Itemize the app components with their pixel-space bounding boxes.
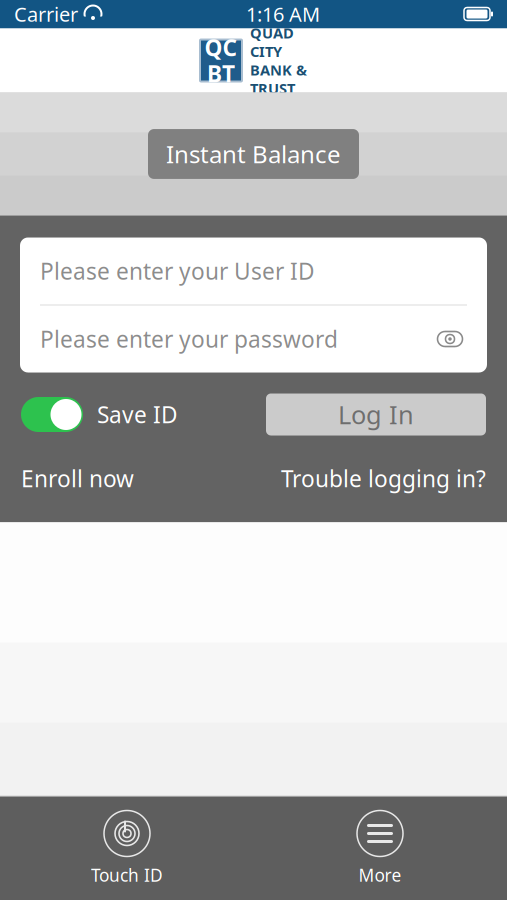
button[interactable]: More (253, 796, 506, 900)
staticText: Instant Balance (166, 138, 341, 170)
staticText: TRUST (250, 78, 295, 98)
button[interactable]: Show password (433, 322, 467, 356)
button[interactable]: Save ID (21, 397, 178, 432)
button[interactable]: Trouble logging in? (281, 463, 486, 494)
button[interactable]: Enroll now (21, 463, 134, 494)
staticText: BANK & (250, 60, 307, 79)
staticText: 1:16 AM (246, 1, 320, 27)
staticText: Please enter your password (40, 324, 338, 354)
staticText: Carrier (14, 1, 78, 27)
button[interactable]: Touch ID (0, 796, 253, 900)
button[interactable]: Instant Balance (148, 129, 359, 179)
staticText: QUAD (250, 23, 294, 42)
staticText: More (358, 863, 401, 886)
staticText: Save ID (97, 399, 178, 429)
staticText: CITY (250, 41, 282, 61)
staticText: Touch ID (91, 863, 163, 886)
button[interactable]: Log In (266, 393, 486, 435)
staticText: Trouble logging in? (281, 463, 486, 494)
staticText: Enroll now (21, 463, 134, 494)
staticText: Please enter your User ID (40, 256, 315, 286)
staticText: Log In (338, 398, 414, 431)
staticText: BT (207, 58, 235, 89)
staticText: QC (204, 32, 237, 62)
